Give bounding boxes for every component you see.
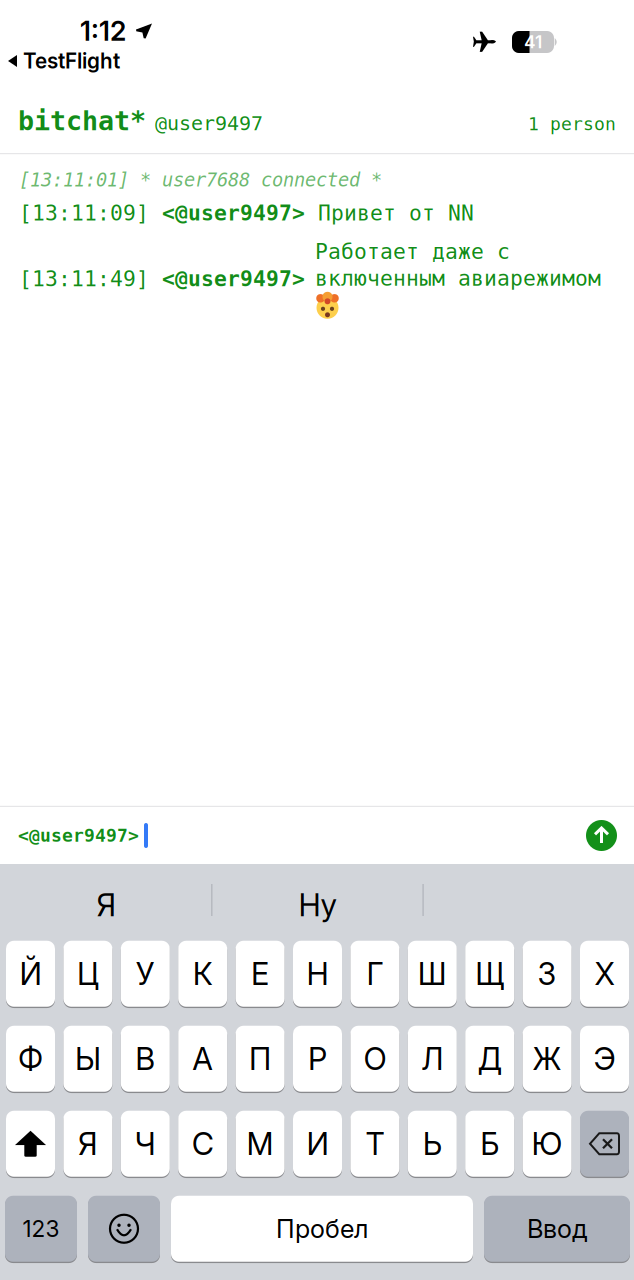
staticText: П xyxy=(249,1040,271,1077)
button[interactable]: Щ xyxy=(465,940,514,1007)
staticText: И xyxy=(306,1125,328,1162)
button[interactable]: О xyxy=(350,1025,399,1092)
staticText: Я xyxy=(78,1125,98,1162)
button[interactable]: Delete xyxy=(580,1110,629,1177)
button[interactable]: М xyxy=(236,1110,285,1177)
staticText: Б xyxy=(480,1125,499,1162)
button[interactable]: Message input xyxy=(18,823,148,848)
staticText: Л xyxy=(421,1040,443,1077)
button[interactable]: Ж xyxy=(523,1025,572,1092)
staticText: Ж xyxy=(533,1040,562,1077)
button[interactable]: Н xyxy=(293,940,342,1007)
staticText: К xyxy=(193,955,213,992)
staticText: Р xyxy=(308,1040,327,1077)
staticText: TestFlight xyxy=(23,48,120,73)
staticText: Й xyxy=(19,955,41,992)
staticText: М xyxy=(247,1125,274,1162)
staticText: Ь xyxy=(423,1125,442,1162)
staticText: Щ xyxy=(475,955,504,992)
staticText: Пробел xyxy=(276,1213,368,1244)
button[interactable]: Ц xyxy=(63,940,112,1007)
staticText: Э xyxy=(593,1040,615,1077)
staticText: Ну xyxy=(298,886,336,923)
button[interactable]: У xyxy=(121,940,170,1007)
button[interactable]: Б xyxy=(465,1110,514,1177)
button[interactable]: Пробел xyxy=(171,1195,473,1262)
button[interactable]: Д xyxy=(465,1025,514,1092)
staticText: Т xyxy=(365,1125,384,1162)
button[interactable]: bitchat channel xyxy=(18,105,263,136)
button[interactable]: Back to TestFlight xyxy=(8,48,120,73)
staticText: @user9497 xyxy=(155,112,263,135)
button[interactable]: Е xyxy=(236,940,285,1007)
button[interactable]: П xyxy=(236,1025,285,1092)
button[interactable]: Ь xyxy=(408,1110,457,1177)
button[interactable]: В xyxy=(121,1025,170,1092)
staticText: У xyxy=(136,955,155,992)
button[interactable]: Emoji xyxy=(88,1195,160,1262)
button[interactable]: А xyxy=(178,1025,227,1092)
staticText: Е xyxy=(251,955,269,992)
staticText: Ц xyxy=(77,955,99,992)
staticText: Ы xyxy=(75,1040,101,1077)
staticText: [13:11:01] * user7688 connected * xyxy=(19,169,382,191)
staticText: О xyxy=(363,1040,386,1077)
button[interactable]: Х xyxy=(580,940,629,1007)
staticText: Я xyxy=(96,886,116,923)
button[interactable]: Ч xyxy=(121,1110,170,1177)
staticText: Г xyxy=(366,955,383,992)
staticText: Ч xyxy=(135,1125,156,1162)
button[interactable]: Й xyxy=(6,940,55,1007)
staticText: Ю xyxy=(532,1125,563,1162)
button[interactable]: Ю xyxy=(523,1110,572,1177)
staticText: <@user9497> xyxy=(18,825,139,846)
staticText: А xyxy=(192,1040,213,1077)
button[interactable]: С xyxy=(178,1110,227,1177)
staticText: [13:11:09] <@user9497> Привет от NN xyxy=(19,201,474,225)
button[interactable]: Ш xyxy=(408,940,457,1007)
button[interactable]: К xyxy=(178,940,227,1007)
button[interactable]: Ы xyxy=(63,1025,112,1092)
staticText: включенным авиарежимом xyxy=(315,266,601,291)
staticText: [13:11:49] <@user9497> xyxy=(19,267,305,291)
button[interactable]: Л xyxy=(408,1025,457,1092)
button[interactable]: Э xyxy=(580,1025,629,1092)
staticText: Работает даже с xyxy=(315,239,510,264)
staticText: Ш xyxy=(418,955,447,992)
button[interactable]: Shift xyxy=(6,1110,55,1177)
button[interactable]: Р xyxy=(293,1025,342,1092)
staticText: З xyxy=(538,955,557,992)
staticText: Ф xyxy=(18,1040,43,1077)
staticText: С xyxy=(192,1125,214,1162)
button[interactable]: Send xyxy=(586,820,617,851)
staticText: Н xyxy=(306,955,328,992)
staticText: 41 xyxy=(524,31,542,52)
button[interactable]: Ф xyxy=(6,1025,55,1092)
button[interactable]: И xyxy=(293,1110,342,1177)
staticText: 1:12 xyxy=(80,15,126,47)
button[interactable]: Ввод xyxy=(484,1195,630,1262)
button[interactable]: Ну xyxy=(298,886,336,923)
staticText: bitchat* xyxy=(18,105,146,136)
staticText: 1 person xyxy=(528,113,616,134)
staticText: В xyxy=(135,1040,155,1077)
button[interactable]: Я xyxy=(63,1110,112,1177)
button[interactable]: Т xyxy=(350,1110,399,1177)
button[interactable]: З xyxy=(523,940,572,1007)
staticText: Х xyxy=(594,955,614,992)
button[interactable]: 123 xyxy=(5,1195,77,1262)
button[interactable]: Я xyxy=(96,886,116,923)
staticText: 123 xyxy=(22,1215,59,1242)
staticText: Ввод xyxy=(527,1213,587,1244)
button[interactable]: Г xyxy=(350,940,399,1007)
button[interactable]: 1 person connected xyxy=(528,113,616,134)
staticText: Д xyxy=(478,1040,502,1077)
